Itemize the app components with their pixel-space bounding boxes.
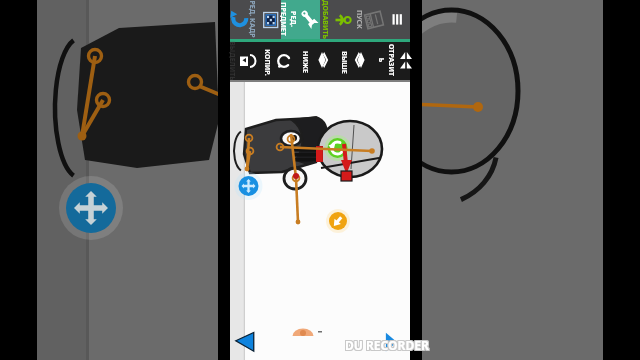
other: Edit object [281, 0, 320, 39]
staticText: ДОБАВИТЬ [320, 0, 330, 39]
button[interactable] [320, 0, 352, 39]
staticText: ВЫДЕЛИТЬ [227, 41, 237, 81]
staticText: DU RECORDER [346, 337, 430, 353]
staticText: DU RECORDER [344, 337, 428, 353]
staticText: DU RECORDER [345, 338, 429, 354]
button[interactable]: Edit object [281, 0, 320, 39]
button[interactable]: Menu [389, 0, 406, 39]
staticText: DU RECORDER [344, 336, 428, 352]
button[interactable] [354, 0, 386, 39]
staticText: DU RECORDER [344, 338, 428, 354]
staticText: РЕД. КАДР [247, 0, 257, 38]
button[interactable] [296, 42, 331, 80]
staticText: РЕД. ПРЕДМЕТ [280, 2, 298, 36]
button[interactable] [257, 42, 292, 80]
staticText: ПУСК [354, 10, 364, 29]
button[interactable] [373, 42, 410, 80]
staticText: DU RECORDER [345, 336, 429, 352]
button[interactable]: Undo [232, 0, 248, 39]
staticText: КОПИР. [262, 49, 272, 76]
staticText: НИЖЕ [300, 51, 310, 73]
button[interactable] [335, 42, 370, 80]
button[interactable]: Select [239, 42, 255, 80]
staticText: DU RECORDER [345, 337, 429, 353]
staticText: DU RECORDER [346, 338, 430, 354]
button[interactable] [248, 0, 281, 39]
staticText: DU RECORDER [346, 336, 430, 352]
staticText: ОТРАЗИТ Ь [378, 44, 396, 76]
staticText: ВЫШЕ [339, 51, 349, 74]
